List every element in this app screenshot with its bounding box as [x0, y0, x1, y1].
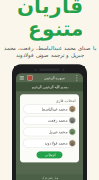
button[interactable]: محمد جبریل — [23, 128, 75, 136]
button[interactable]: Bookmarks — [26, 74, 34, 82]
staticText: نوار پخش قرآن — [41, 176, 58, 179]
staticText: انتخاب قاری — [55, 98, 75, 103]
staticText: محمد رفعت — [47, 118, 67, 123]
staticText: ≡ — [19, 74, 25, 82]
staticText: ⋮ — [73, 74, 80, 82]
button[interactable]: محمد عبدالباسط — [23, 105, 75, 113]
staticText: بسم الله الرحمن الرحیم — [31, 84, 68, 89]
button[interactable]: محمد فولادوند — [23, 139, 75, 147]
button[interactable]: محمد رفعت — [23, 116, 75, 125]
staticText: قاریان متنوع — [16, 0, 82, 40]
staticText: با صدای محمد عبدالباسط، رفعت، محمد — [3, 45, 95, 51]
staticText: سوره الرحمن — [43, 75, 64, 80]
staticText: محمد فولادوند — [44, 141, 67, 145]
button[interactable]: انتخاب — [36, 151, 62, 158]
button[interactable]: More options — [73, 74, 81, 82]
button[interactable]: Menu — [18, 74, 26, 82]
staticText: محمد عبدالباسط — [41, 107, 67, 111]
staticText: جبریل و ترجمه صوتی فولادوند — [15, 52, 83, 58]
staticText: محمد جبریل — [48, 129, 67, 134]
staticText: انتخاب — [44, 153, 55, 157]
